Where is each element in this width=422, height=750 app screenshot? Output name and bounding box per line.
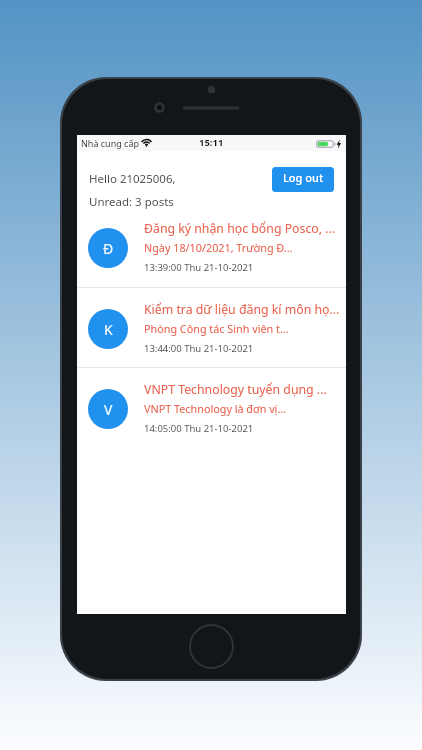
- staticText: VNPT Technology tuyển dụng ...: [144, 381, 354, 398]
- staticText: 13:39:00 Thu 21-10-2021: [144, 261, 254, 274]
- staticText: 15:11: [199, 136, 224, 149]
- button[interactable]: Log out: [272, 167, 334, 192]
- staticText: Ngày 18/10/2021, Trường Đ...: [144, 240, 354, 255]
- staticText: 13:44:00 Thu 21-10-2021: [144, 342, 254, 355]
- staticText: 14:05:00 Thu 21-10-2021: [144, 422, 254, 435]
- staticText: V: [104, 400, 113, 419]
- staticText: Log out: [283, 170, 324, 185]
- staticText: VNPT Technology là đơn vị...: [144, 401, 354, 416]
- button[interactable]: Đ: [77, 207, 346, 288]
- staticText: Phòng Công tác Sinh viên t...: [144, 321, 354, 336]
- staticText: Đăng ký nhận học bổng Posco, ...: [144, 220, 354, 237]
- button[interactable]: V: [77, 368, 346, 449]
- staticText: Hello 21025006,: [89, 171, 176, 187]
- staticText: K: [104, 320, 113, 339]
- staticText: Unread: 3 posts: [89, 194, 174, 210]
- other: Wi-Fi: [141, 138, 152, 146]
- other: Battery charging: [316, 140, 343, 148]
- staticText: Đ: [103, 239, 114, 258]
- button[interactable]: K: [77, 288, 346, 369]
- staticText: Nhà cung cấp: [81, 137, 140, 149]
- staticText: Kiểm tra dữ liệu đăng kí môn họ...: [144, 301, 354, 318]
